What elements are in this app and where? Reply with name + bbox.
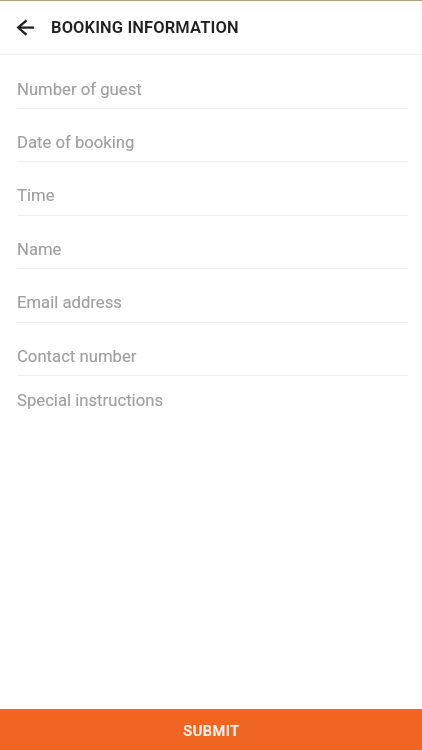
button[interactable]: SUBMIT <box>0 709 422 750</box>
button[interactable]: Time <box>0 162 422 215</box>
button[interactable]: Date of booking <box>0 109 422 162</box>
button[interactable]: Number of guest <box>0 56 422 109</box>
button[interactable]: Back <box>8 10 42 44</box>
staticText: Contact number <box>17 347 137 367</box>
staticText: BOOKING INFORMATION <box>51 18 239 37</box>
staticText: Email address <box>17 293 122 313</box>
button[interactable]: Special instructions <box>0 376 422 429</box>
staticText: SUBMIT <box>183 723 240 740</box>
button[interactable]: Email address <box>0 269 422 322</box>
button[interactable]: Name <box>0 216 422 269</box>
staticText: Name <box>17 240 62 260</box>
staticText: Date of booking <box>17 133 135 153</box>
staticText: Number of guest <box>17 80 142 100</box>
staticText: Time <box>17 186 55 206</box>
button[interactable]: Contact number <box>0 323 422 376</box>
staticText: Special instructions <box>17 391 163 411</box>
